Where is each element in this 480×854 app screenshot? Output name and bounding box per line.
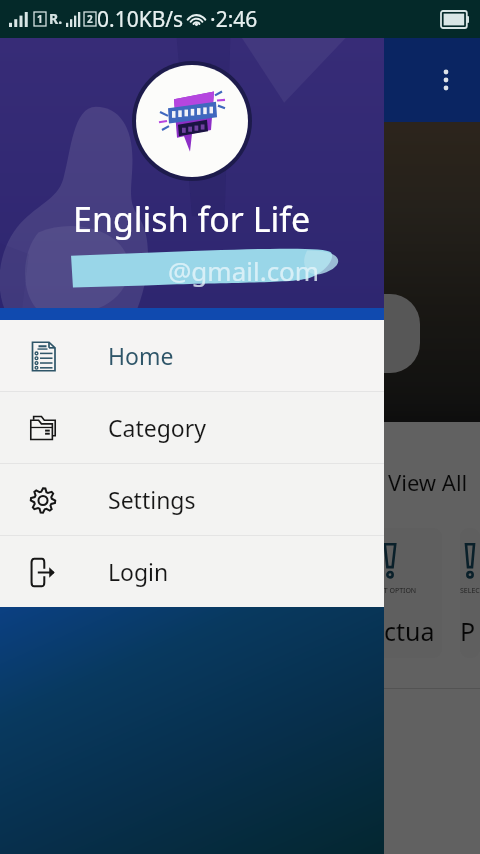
button[interactable]: More options [426, 60, 466, 100]
staticText: Login [108, 556, 169, 587]
staticText: R. [49, 9, 63, 28]
staticText: @gmail.com [168, 253, 320, 288]
staticText: 1 [37, 12, 43, 26]
staticText: Punctuation [338, 614, 442, 648]
button[interactable]: View All [388, 467, 468, 497]
button[interactable]: Home [0, 320, 384, 391]
staticText: SELECT OPTION [364, 586, 417, 596]
staticText: Home [108, 340, 174, 371]
staticText: 2 [87, 12, 93, 26]
staticText: Category [108, 412, 207, 443]
staticText: View All [388, 467, 468, 497]
button[interactable]: SELECT OPTION [216, 528, 320, 658]
button[interactable]: Category [0, 392, 384, 463]
staticText: Settings [108, 484, 196, 515]
button[interactable]: Settings [0, 464, 384, 535]
staticText: ·2:46 [210, 5, 258, 34]
button[interactable]: SELECT OPTION [338, 528, 442, 658]
staticText: Categories [17, 467, 129, 497]
staticText: 0.10KB/s [97, 5, 184, 34]
button[interactable]: Login [0, 536, 384, 607]
staticText: Prepositions [460, 614, 480, 648]
staticText: English for Life [73, 196, 311, 242]
staticText: Articles [103, 614, 190, 648]
button[interactable]: SELECT OPTION [460, 528, 480, 658]
staticText: SELECT OPTION [460, 586, 480, 596]
staticText: SELECT OPTION [120, 586, 173, 596]
button[interactable]: SELECT OPTION [94, 528, 198, 658]
